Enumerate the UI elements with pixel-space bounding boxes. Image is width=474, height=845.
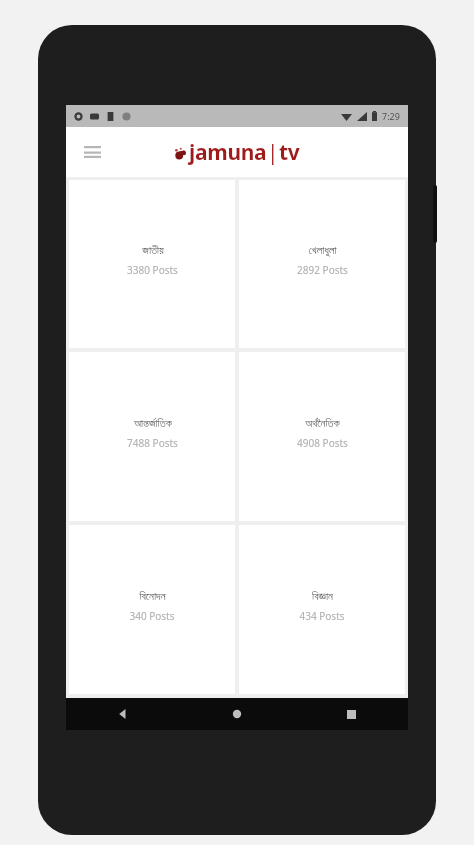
staticText: খেলাধুলা <box>308 245 337 256</box>
staticText: 340 Posts <box>129 609 175 623</box>
button[interactable]: জাতীয় <box>69 180 235 348</box>
staticText: 2892 Posts <box>297 263 348 277</box>
button[interactable]: খেলাধুলা <box>239 180 405 348</box>
staticText: 3380 Posts <box>127 263 178 277</box>
staticText: বিজ্ঞান <box>312 591 333 602</box>
button[interactable]: Menu <box>76 136 108 168</box>
button[interactable]: Recent apps <box>294 698 408 730</box>
staticText: জাতীয় <box>142 245 164 256</box>
staticText: 7:29 <box>382 110 400 122</box>
staticText: বিনোদন <box>139 591 166 602</box>
staticText: অর্থনৈতিক <box>305 418 340 429</box>
button[interactable]: আন্তর্জাতিক <box>69 352 235 521</box>
staticText: 434 Posts <box>299 609 345 623</box>
button[interactable]: Back <box>66 698 180 730</box>
staticText: আন্তর্জাতিক <box>134 418 172 429</box>
button[interactable]: বিজ্ঞান <box>239 525 405 694</box>
staticText: tv <box>279 138 300 167</box>
staticText: 7488 Posts <box>127 436 178 450</box>
staticText: jamuna <box>189 138 267 167</box>
button[interactable]: বিনোদন <box>69 525 235 694</box>
staticText: 4908 Posts <box>297 436 348 450</box>
staticText: | <box>267 138 279 167</box>
button[interactable]: Home <box>180 698 294 730</box>
button[interactable]: অর্থনৈতিক <box>239 352 405 521</box>
